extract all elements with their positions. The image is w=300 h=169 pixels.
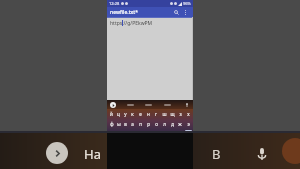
button[interactable]: б (168, 129, 176, 139)
button[interactable]: ы (115, 119, 122, 129)
button[interactable]: Next (46, 142, 68, 164)
staticText: б (171, 131, 174, 137)
button[interactable]: т (152, 129, 160, 139)
staticText: к (131, 111, 134, 117)
button[interactable]: а (129, 119, 136, 129)
button[interactable]: ч (122, 129, 129, 139)
button[interactable]: ю (176, 129, 184, 139)
staticText: в (124, 121, 127, 127)
button[interactable]: Shift (107, 129, 115, 139)
button[interactable]: Backspace (185, 130, 192, 138)
staticText: ф (110, 121, 114, 127)
button[interactable]: г (152, 109, 160, 119)
staticText: н (147, 111, 150, 117)
button[interactable]: п (136, 119, 144, 129)
staticText: з (179, 111, 182, 117)
button[interactable]: ш (160, 109, 168, 119)
button[interactable]: м (136, 129, 144, 139)
button[interactable]: ж (176, 119, 184, 129)
button[interactable]: в (122, 119, 129, 129)
button[interactable] (164, 104, 171, 106)
button[interactable]: В (212, 145, 221, 163)
button[interactable]: и (144, 129, 152, 139)
button[interactable]: Voice search (252, 144, 272, 164)
staticText: 96% (183, 1, 191, 6)
button[interactable]: н (144, 109, 152, 119)
button[interactable]: о (152, 119, 160, 129)
button[interactable]: д (168, 119, 176, 129)
staticText: х (187, 111, 190, 117)
button[interactable]: с (129, 129, 136, 139)
button[interactable]: е (136, 109, 144, 119)
button[interactable]: я (115, 129, 122, 139)
staticText: д (171, 121, 174, 127)
staticText: а (131, 121, 134, 127)
button[interactable]: https://g/PEkwPM (107, 17, 193, 100)
button[interactable]: ф (108, 119, 115, 129)
button[interactable]: л (160, 119, 168, 129)
button[interactable]: з (176, 109, 184, 119)
button[interactable]: More options (181, 8, 190, 17)
staticText: На (84, 145, 101, 163)
staticText: г (155, 111, 157, 117)
staticText: и (147, 131, 150, 137)
staticText: ь (163, 131, 166, 137)
button[interactable] (145, 104, 152, 106)
staticText: я (117, 131, 120, 137)
button[interactable]: у (122, 109, 129, 119)
staticText: ч (124, 131, 127, 137)
staticText: р (147, 121, 150, 127)
button[interactable]: х (184, 109, 192, 119)
staticText: э (187, 121, 190, 127)
button[interactable]: й (108, 109, 115, 119)
staticText: newfile.txt* (110, 9, 138, 16)
button[interactable]: Voice input (183, 101, 190, 108)
staticText: ж (178, 121, 182, 127)
button[interactable]: Google Assistant (110, 102, 116, 108)
button[interactable]: р (144, 119, 152, 129)
staticText: е (139, 111, 142, 117)
button[interactable]: к (129, 109, 136, 119)
staticText: https://g/PEkwPM (110, 20, 153, 27)
staticText: ы (117, 121, 121, 127)
button[interactable]: ц (115, 109, 122, 119)
button[interactable]: Search (172, 8, 181, 17)
button[interactable] (127, 104, 134, 106)
staticText: ц (117, 111, 120, 117)
button[interactable]: э (184, 119, 192, 129)
staticText: у (124, 111, 127, 117)
button[interactable]: щ (168, 109, 176, 119)
staticText: т (155, 131, 158, 137)
staticText: с (131, 131, 134, 137)
staticText: щ (170, 111, 175, 117)
staticText: й (110, 111, 113, 117)
staticText: п (139, 121, 142, 127)
staticText: 12:28 (109, 1, 120, 6)
button[interactable]: ь (160, 129, 168, 139)
staticText: м (138, 131, 142, 137)
staticText: ш (162, 111, 167, 117)
staticText: о (155, 121, 158, 127)
staticText: л (163, 121, 166, 127)
staticText: ю (178, 131, 182, 137)
